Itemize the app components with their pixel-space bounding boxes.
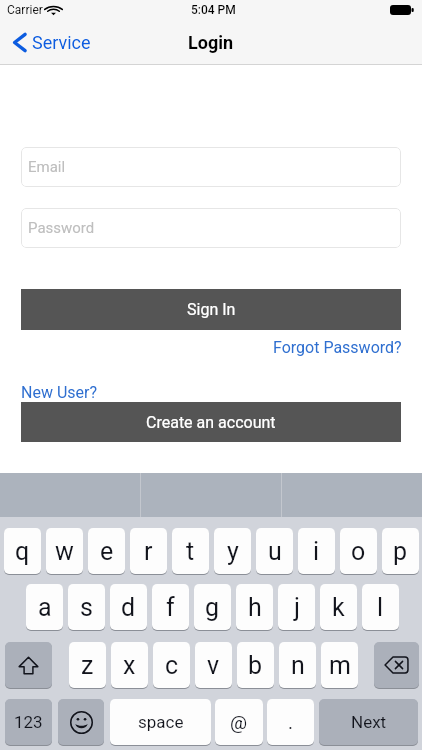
button[interactable]: d [110, 584, 147, 630]
button[interactable]: z [69, 642, 106, 688]
button[interactable]: Sign In [21, 289, 401, 330]
staticText: Service [32, 32, 91, 53]
button[interactable]: Backspace [374, 642, 419, 688]
staticText: h [248, 593, 262, 622]
staticText: l [377, 593, 384, 622]
button[interactable]: Emoji [58, 699, 104, 745]
staticText: j [294, 593, 300, 622]
staticText: n [291, 651, 305, 680]
staticText: e [100, 537, 114, 566]
staticText: f [166, 593, 175, 622]
staticText: Carrier [7, 3, 43, 17]
button[interactable]: g [194, 584, 231, 630]
staticText: u [268, 537, 282, 566]
staticText: i [313, 537, 320, 566]
button[interactable]: x [111, 642, 148, 688]
staticText: b [248, 651, 263, 680]
button[interactable]: k [320, 584, 357, 630]
staticText: . [288, 711, 294, 733]
staticText: Password [28, 219, 95, 237]
staticText: t [186, 537, 195, 566]
staticText: Forgot Password? [273, 338, 402, 357]
staticText: y [227, 537, 239, 566]
staticText: c [165, 651, 179, 680]
button[interactable]: b [237, 642, 274, 688]
staticText: g [205, 593, 220, 622]
button[interactable]: Forgot Password? [273, 338, 402, 357]
button[interactable]: c [153, 642, 190, 688]
button[interactable]: t [172, 528, 209, 574]
button[interactable]: w [46, 528, 83, 574]
button[interactable]: Password [21, 208, 401, 248]
staticText: r [144, 537, 153, 566]
staticText: @ [230, 711, 248, 733]
staticText: p [393, 537, 408, 566]
staticText: q [15, 537, 30, 566]
button[interactable]: . [267, 699, 314, 745]
button[interactable]: Create an account [21, 402, 401, 442]
button[interactable]: v [195, 642, 232, 688]
staticText: a [38, 593, 52, 622]
staticText: Create an account [146, 413, 276, 432]
button[interactable]: o [340, 528, 377, 574]
button[interactable]: Service [0, 26, 101, 59]
button[interactable]: @ [215, 699, 263, 745]
staticText: Login [188, 32, 234, 53]
staticText: k [332, 593, 345, 622]
button[interactable]: Email [21, 147, 401, 187]
staticText: d [121, 593, 136, 622]
staticText: Sign In [187, 300, 236, 319]
button[interactable]: l [362, 584, 399, 630]
staticText: 5:04 PM [191, 3, 236, 17]
staticText: m [329, 651, 351, 680]
staticText: w [55, 537, 74, 566]
button[interactable]: u [256, 528, 293, 574]
button[interactable]: r [130, 528, 167, 574]
button[interactable]: q [4, 528, 41, 574]
button[interactable]: n [279, 642, 316, 688]
staticText: x [123, 651, 136, 680]
button[interactable]: a [26, 584, 63, 630]
staticText: v [207, 651, 220, 680]
button[interactable]: s [68, 584, 105, 630]
staticText: o [351, 537, 366, 566]
button[interactable]: i [298, 528, 335, 574]
staticText: z [81, 651, 94, 680]
staticText: Next [351, 712, 387, 732]
staticText: space [138, 712, 184, 732]
button[interactable]: f [152, 584, 189, 630]
button[interactable]: p [382, 528, 419, 574]
staticText: New User? [21, 383, 97, 402]
staticText: s [80, 593, 93, 622]
button[interactable]: y [214, 528, 251, 574]
button[interactable]: h [236, 584, 273, 630]
button[interactable]: j [278, 584, 315, 630]
staticText: 123 [14, 712, 43, 732]
button[interactable]: New User? [21, 383, 97, 402]
button[interactable]: Shift [5, 642, 52, 688]
staticText: Email [28, 158, 66, 176]
button[interactable]: 123 [5, 699, 52, 745]
button[interactable]: e [88, 528, 125, 574]
button[interactable]: space [110, 699, 211, 745]
button[interactable]: Next [319, 699, 418, 745]
button[interactable]: m [321, 642, 358, 688]
